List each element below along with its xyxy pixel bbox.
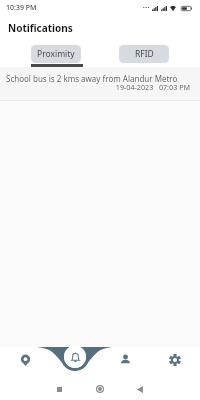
button[interactable]: Profile — [112, 346, 138, 372]
button[interactable]: School bus is 2 kms away from Alandur Me… — [0, 67, 200, 100]
button[interactable]: RFID — [119, 45, 169, 63]
staticText: 19-04-2023 07:03 PM — [6, 82, 190, 92]
button[interactable]: Home — [87, 378, 113, 400]
staticText: RFID — [135, 48, 154, 60]
staticText: Proximity — [37, 48, 75, 60]
staticText: 10:39 PM — [6, 3, 37, 13]
button[interactable]: Back — [127, 378, 153, 400]
staticText: Notifications — [8, 21, 73, 35]
button[interactable]: Notifications — [64, 346, 86, 368]
staticText: School bus is 2 kms away from Alandur Me… — [6, 73, 178, 84]
button[interactable]: Recents — [46, 378, 72, 400]
button[interactable]: Location — [12, 347, 38, 373]
button[interactable]: Settings — [162, 347, 188, 373]
button[interactable]: Proximity — [31, 45, 81, 63]
